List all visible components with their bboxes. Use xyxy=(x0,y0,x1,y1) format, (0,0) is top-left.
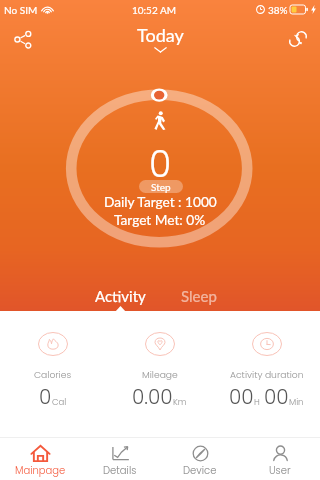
staticText: 0 xyxy=(149,139,172,189)
button[interactable]: Calories xyxy=(0,311,106,411)
button[interactable]: Mainpage xyxy=(0,438,80,480)
staticText: User xyxy=(269,463,291,477)
button[interactable]: User xyxy=(240,438,320,480)
staticText: Step xyxy=(151,181,171,193)
button[interactable]: Share xyxy=(8,25,36,53)
staticText: Cal xyxy=(52,396,67,408)
staticText: No SIM xyxy=(4,4,38,16)
button[interactable]: Device disconnected xyxy=(284,25,312,53)
staticText: Details xyxy=(103,463,137,477)
button[interactable]: Mileage xyxy=(106,311,213,411)
staticText: Mainpage xyxy=(15,463,66,477)
button[interactable]: Sleep xyxy=(159,287,239,311)
staticText: 0 xyxy=(39,383,52,411)
staticText: Device xyxy=(183,463,217,477)
staticText: 00 xyxy=(264,383,289,411)
staticText: Calories xyxy=(34,368,72,381)
staticText: Activity xyxy=(95,287,146,305)
staticText: Mileage xyxy=(142,368,178,381)
staticText: Target Met: 0% xyxy=(114,211,206,227)
button[interactable]: Activity xyxy=(80,287,160,311)
staticText: Daily Target : 1000 xyxy=(104,193,217,209)
staticText: 10:52 AM xyxy=(132,4,176,16)
staticText: Today xyxy=(137,24,184,46)
button[interactable]: Step xyxy=(139,180,183,193)
staticText: Min xyxy=(289,396,304,408)
staticText: Sleep xyxy=(181,287,217,305)
button[interactable]: Activity duration xyxy=(213,311,320,411)
staticText: Km xyxy=(173,396,187,408)
staticText: 0.00 xyxy=(132,383,173,411)
staticText: H xyxy=(254,396,260,408)
staticText: 00 xyxy=(229,383,254,411)
button[interactable]: Device xyxy=(160,438,240,480)
staticText: Activity duration xyxy=(230,368,304,381)
staticText: 38% xyxy=(268,4,288,16)
button[interactable]: Details xyxy=(80,438,160,480)
